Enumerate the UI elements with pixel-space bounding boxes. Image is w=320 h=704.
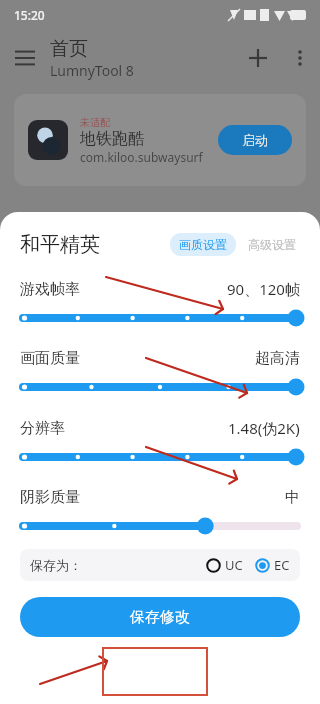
button[interactable]: 未适配	[14, 94, 306, 186]
button[interactable]: UC	[206, 556, 243, 574]
staticText: 画面质量	[20, 349, 80, 368]
button[interactable]: 保存修改	[20, 597, 300, 637]
staticText: 分辨率	[20, 419, 65, 438]
staticText: 启动	[242, 132, 268, 148]
staticText: 阴影质量	[20, 488, 80, 507]
button[interactable]: Add	[236, 36, 280, 80]
staticText: 保存修改	[130, 608, 190, 627]
button[interactable]: 画面质量	[20, 378, 300, 396]
staticText: 画质设置	[179, 237, 227, 252]
button[interactable]: Menu	[0, 33, 50, 83]
staticText: LumnyTool 8	[50, 61, 134, 80]
button[interactable]: EC	[255, 556, 290, 574]
staticText: 地铁跑酷	[80, 129, 144, 149]
staticText: EC	[274, 556, 290, 574]
staticText: com.kiloo.subwaysurf	[80, 149, 203, 165]
staticText: UC	[225, 556, 243, 574]
staticText: 1.48(伪2K)	[228, 418, 300, 438]
staticText: 未适配	[80, 116, 110, 129]
staticText: 超高清	[255, 349, 300, 368]
button[interactable]: More options	[280, 38, 320, 78]
staticText: 游戏帧率	[20, 280, 80, 299]
staticText: 保存为：	[30, 557, 82, 573]
button[interactable]: 分辨率	[20, 448, 300, 466]
button[interactable]: 游戏帧率	[20, 309, 300, 327]
button[interactable]: 启动	[218, 125, 292, 155]
staticText: 15:20	[14, 7, 45, 23]
staticText: 和平精英	[20, 232, 100, 257]
staticText: 首页	[50, 37, 88, 61]
staticText: 90、120帧	[227, 279, 300, 299]
staticText: 中	[285, 488, 300, 507]
button[interactable]: 阴影质量	[20, 517, 300, 535]
staticText: 高级设置	[248, 237, 296, 252]
button[interactable]: 高级设置	[248, 237, 296, 252]
button[interactable]: 画质设置	[179, 237, 227, 252]
